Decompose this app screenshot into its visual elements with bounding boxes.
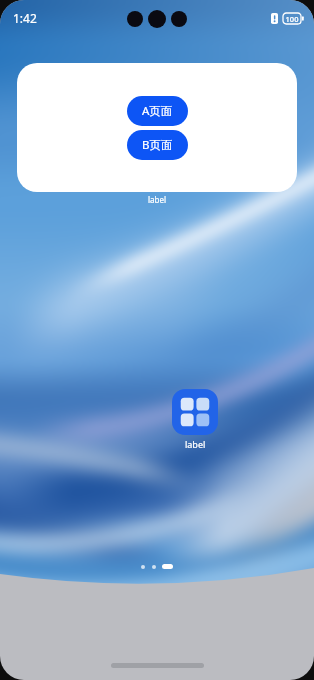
staticText: A页面 [142,103,173,119]
staticText: 1:42 [13,10,37,26]
button[interactable]: label app [172,389,218,435]
staticText: B页面 [142,137,173,153]
button[interactable]: A页面 [127,96,188,126]
button[interactable]: B页面 [127,130,188,160]
staticText: label [0,194,314,205]
staticText: label [185,438,206,450]
staticText: 100 [283,14,301,24]
